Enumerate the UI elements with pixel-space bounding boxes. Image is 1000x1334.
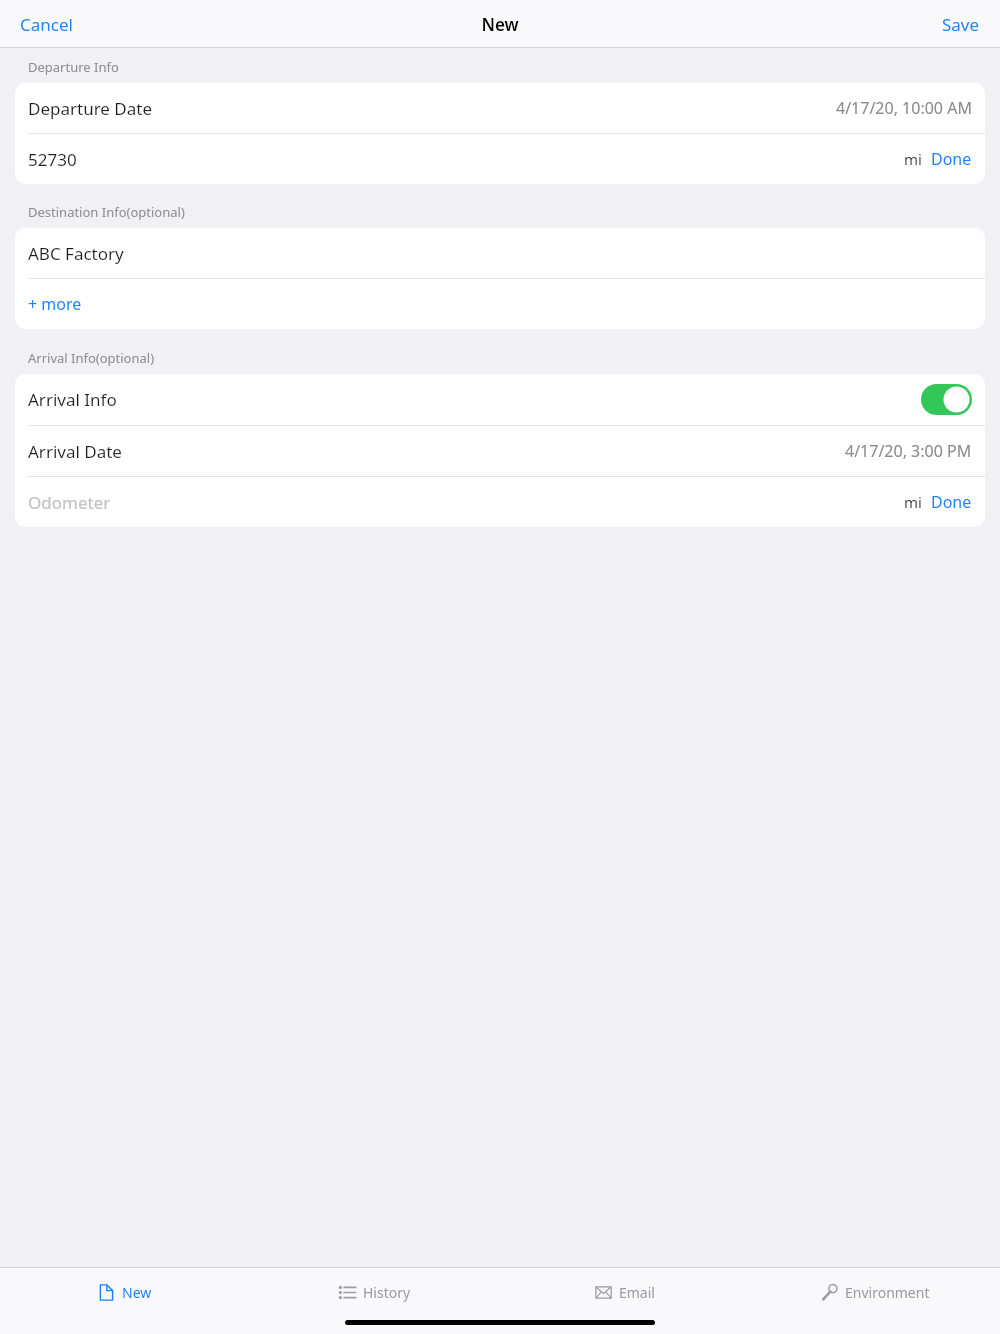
staticText: Arrival Date [28,440,122,463]
button[interactable]: New [0,1268,250,1316]
staticText: History [363,1283,411,1302]
button[interactable]: ABC Factory [15,228,985,278]
button[interactable]: Done [931,491,972,513]
staticText: Cancel [20,13,73,36]
button[interactable]: Arrival Date [15,426,985,476]
staticText: Destination Info(optional) [28,203,185,221]
button[interactable]: History [250,1268,500,1316]
button[interactable]: Departure Date [15,83,985,133]
button[interactable]: Arrival Info [15,374,985,425]
staticText: Email [619,1283,655,1302]
staticText: 52730 [28,148,77,171]
staticText: Done [931,491,972,513]
staticText: New [122,1283,152,1302]
button[interactable]: Cancel [0,2,93,47]
staticText: ABC Factory [28,242,124,265]
staticText: Odometer [28,491,111,514]
staticText: Save [942,13,980,36]
staticText: Departure Date [28,97,153,120]
button[interactable]: + more [15,279,985,329]
staticText: Arrival Info [28,388,117,411]
staticText: New [481,13,519,36]
staticText: + more [28,293,82,315]
staticText: Departure Info [28,58,119,76]
staticText: 4/17/20, 3:00 PM [845,440,972,462]
staticText: Done [931,148,972,170]
staticText: 4/17/20, 10:00 AM [836,97,972,119]
staticText: mi [904,492,922,512]
button[interactable]: Arrival Info toggle [921,384,972,415]
button[interactable]: 52730 [15,134,985,184]
staticText: Arrival Info(optional) [28,349,155,367]
button[interactable]: Email [500,1268,750,1316]
button[interactable]: Environment [750,1268,1000,1316]
button[interactable]: Done [931,148,972,170]
button[interactable]: Save [922,2,1000,47]
staticText: Environment [845,1283,930,1302]
staticText: mi [904,149,922,169]
button[interactable]: Odometer [15,477,985,527]
